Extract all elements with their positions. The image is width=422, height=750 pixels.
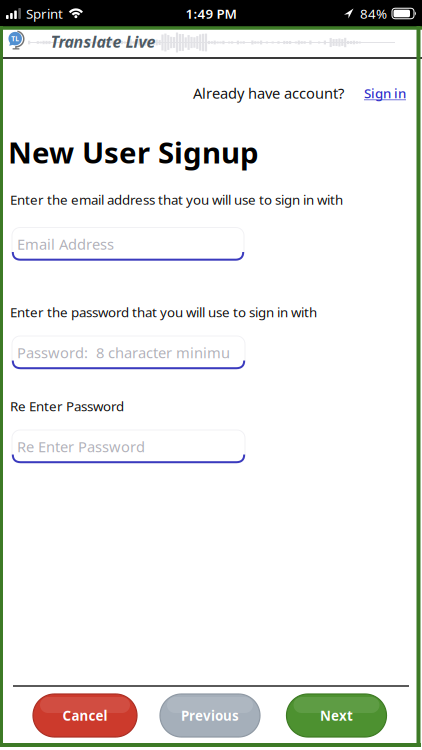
button[interactable]: Re Enter Password xyxy=(12,430,245,463)
staticText: Sprint xyxy=(26,5,63,22)
staticText: 1:49 PM xyxy=(185,5,236,22)
staticText: Sign in xyxy=(364,84,406,102)
staticText: Enter the password that you will use to … xyxy=(10,303,317,321)
staticText: Email Address xyxy=(17,234,114,254)
staticText: 84% xyxy=(360,5,387,22)
button[interactable]: Previous xyxy=(160,694,260,737)
staticText: Next xyxy=(320,707,353,724)
staticText: Password: 8 character minimu xyxy=(17,343,230,362)
button[interactable]: Email Address xyxy=(12,227,244,260)
staticText: New User Signup xyxy=(8,132,259,171)
staticText: Re Enter Password xyxy=(17,437,145,456)
button[interactable]: Sign in xyxy=(344,84,406,102)
staticText: Previous xyxy=(181,707,239,724)
staticText: Already have account? xyxy=(193,83,344,103)
staticText: Enter the email address that you will us… xyxy=(10,191,343,208)
staticText: TL xyxy=(11,34,19,43)
staticText: Re Enter Password xyxy=(10,397,124,415)
button[interactable]: Password: 8 character minimu xyxy=(12,336,245,369)
button[interactable]: Cancel xyxy=(33,694,137,737)
staticText: Translate Live xyxy=(50,31,155,52)
button[interactable]: Next xyxy=(286,694,386,737)
staticText: Cancel xyxy=(62,707,107,724)
button[interactable]: Already have account? xyxy=(193,83,344,103)
